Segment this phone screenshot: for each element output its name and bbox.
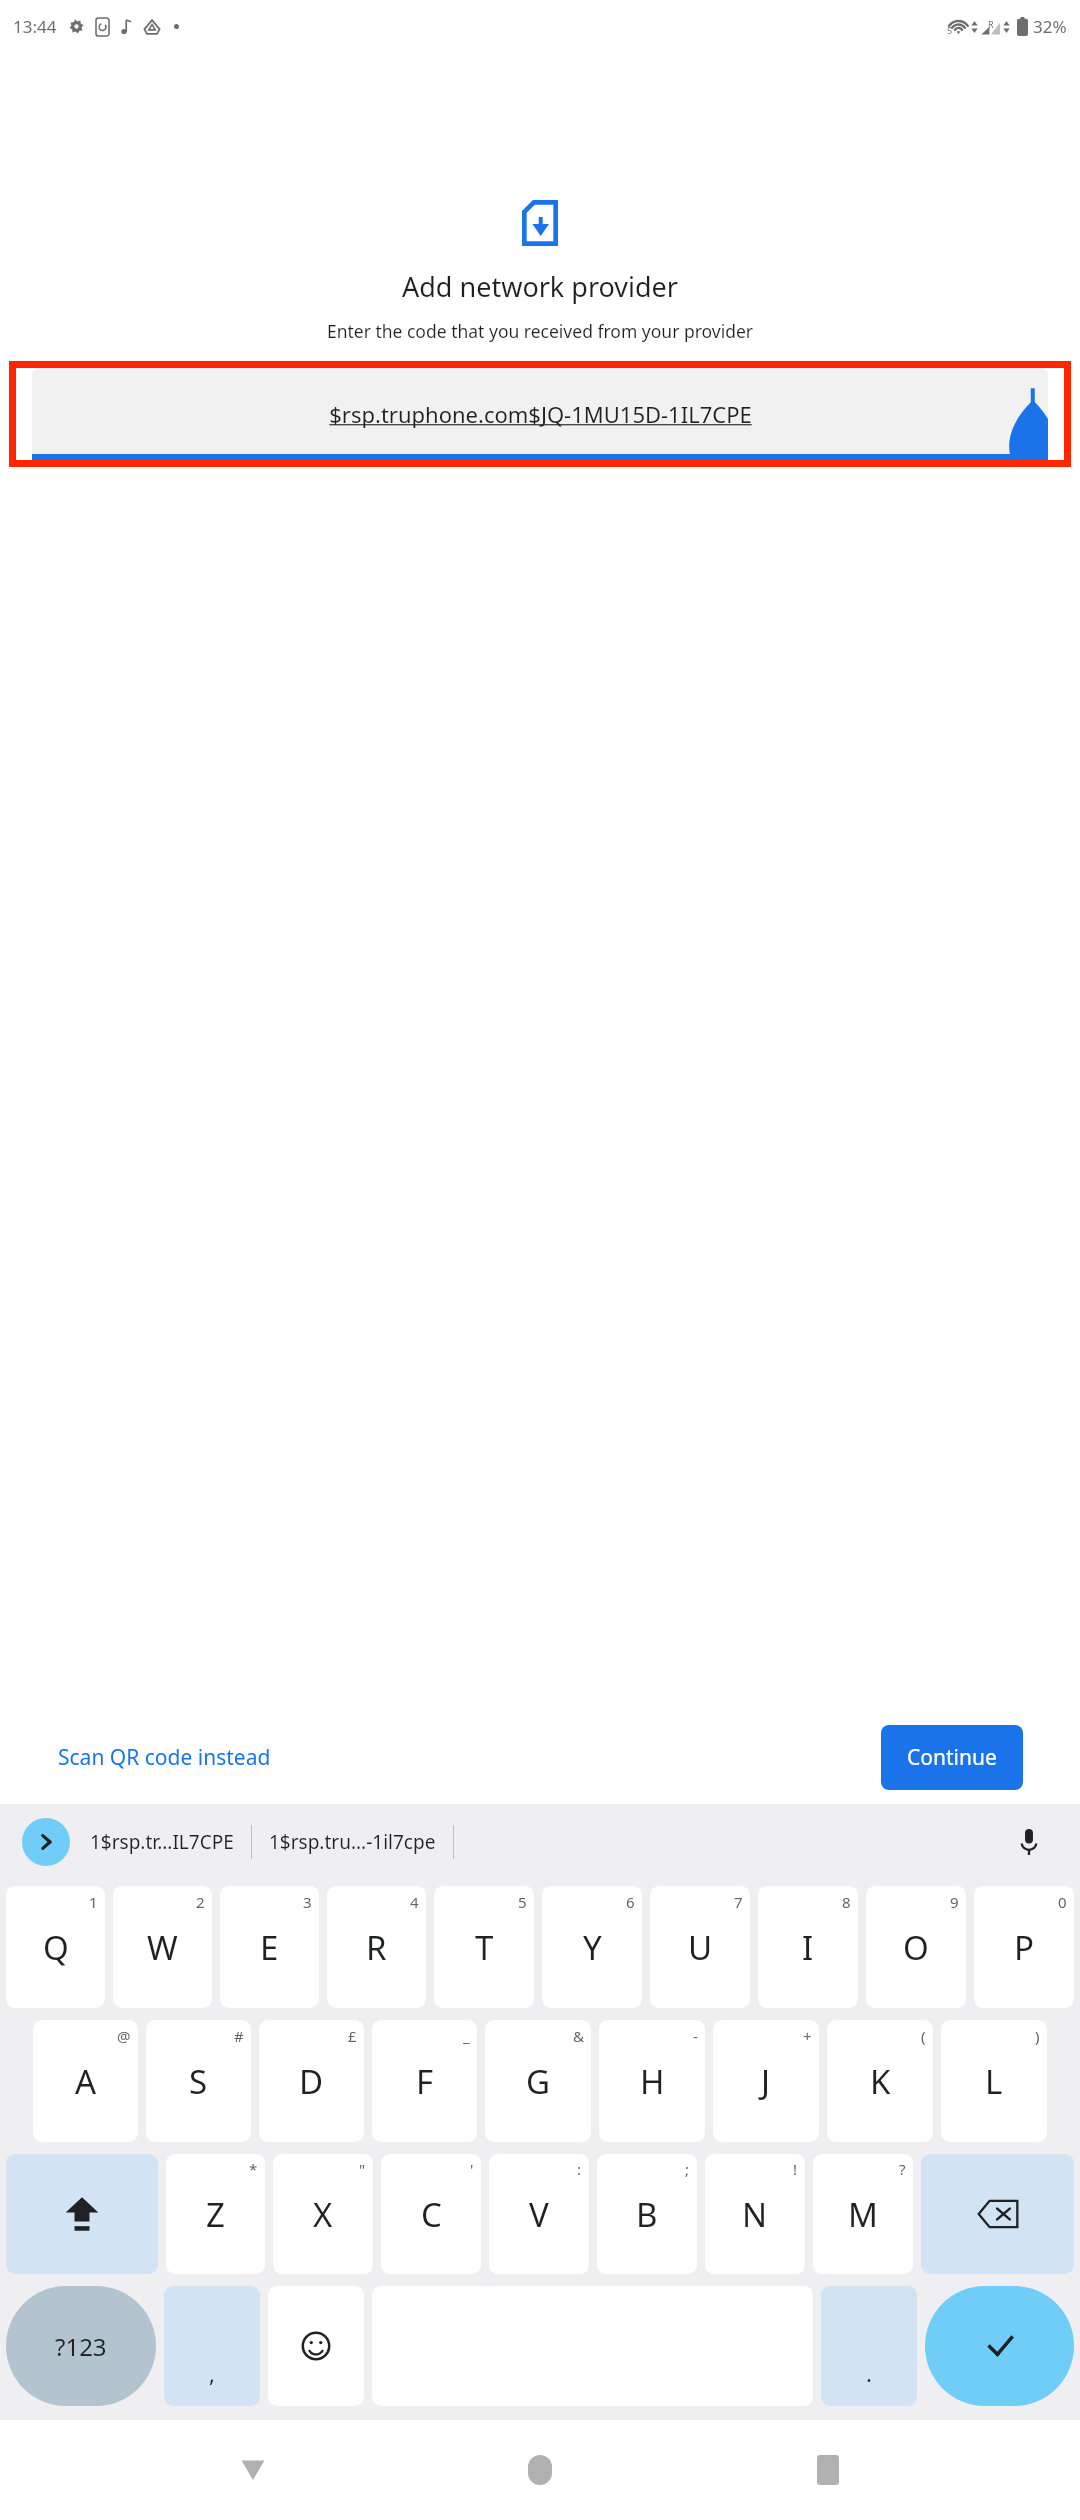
button[interactable]: T [434, 1886, 534, 2008]
staticText: F [416, 2059, 434, 2104]
staticText: ' [470, 2159, 474, 2179]
button[interactable]: Home [505, 2435, 575, 2505]
staticText: 13:44 [13, 15, 57, 38]
staticText: 2 [196, 1892, 205, 1912]
staticText: S [189, 2059, 208, 2104]
button[interactable]: N [705, 2154, 805, 2274]
button[interactable]: Scan QR code instead [52, 1733, 277, 1782]
button[interactable]: I [758, 1886, 858, 2008]
button[interactable]: A [33, 2020, 138, 2142]
staticText: + [803, 2026, 812, 2046]
button[interactable]: Expand suggestions [22, 1818, 70, 1866]
staticText: O [903, 1925, 929, 1970]
button[interactable]: S [146, 2020, 251, 2142]
button[interactable]: O [866, 1886, 966, 2008]
staticText: J [761, 2059, 771, 2104]
staticText: X [313, 2192, 333, 2237]
staticText: C [421, 2192, 442, 2237]
button[interactable]: Z [166, 2154, 265, 2274]
button[interactable]: 1$rsp.tr...IL7CPE [86, 1821, 238, 1863]
staticText: Z [206, 2192, 225, 2237]
button[interactable]: F [372, 2020, 477, 2142]
staticText: ?123 [55, 2330, 107, 2363]
staticText: 4 [410, 1892, 419, 1912]
staticText: L [985, 2059, 1003, 2104]
button[interactable]: $rsp.truphone.com$JQ-1MU15D-1IL7CPE [32, 368, 1048, 460]
button[interactable]: M [813, 2154, 913, 2274]
staticText: 9 [950, 1892, 959, 1912]
staticText: I [802, 1925, 814, 1970]
staticText: " [359, 2159, 366, 2179]
button[interactable]: Q [6, 1886, 105, 2008]
button[interactable]: J [713, 2020, 819, 2142]
staticText: * [249, 2159, 258, 2179]
staticText: R [366, 1925, 387, 1970]
button[interactable]: Shift [6, 2154, 158, 2274]
button[interactable]: R [327, 1886, 426, 2008]
button[interactable]: E [220, 1886, 319, 2008]
staticText: W [147, 1925, 178, 1970]
staticText: A [75, 2059, 97, 2104]
button[interactable]: Back [218, 2435, 288, 2505]
button[interactable]: X [273, 2154, 373, 2274]
button[interactable]: G [485, 2020, 591, 2142]
button[interactable]: P [974, 1886, 1074, 2008]
staticText: U [688, 1925, 713, 1970]
button[interactable]: Continue [881, 1725, 1023, 1790]
staticText: $rsp.truphone.com$JQ-1MU15D-1IL7CPE [329, 399, 752, 429]
staticText: P [1014, 1925, 1034, 1970]
button[interactable]: Y [542, 1886, 642, 2008]
button[interactable]: V [489, 2154, 589, 2274]
button[interactable]: Emoji [268, 2286, 364, 2406]
staticText: R [988, 18, 994, 30]
button[interactable]: H [599, 2020, 705, 2142]
staticText: , [209, 2358, 215, 2388]
staticText: 8 [842, 1892, 851, 1912]
staticText: & [573, 2026, 584, 2046]
staticText: Y [583, 1925, 602, 1970]
staticText: 1$rsp.tru...-1il7cpe [269, 1829, 436, 1855]
staticText: Add network provider [0, 268, 1080, 305]
staticText: V [529, 2192, 549, 2237]
staticText: Q [43, 1925, 69, 1970]
button[interactable]: Backspace [921, 2154, 1074, 2274]
button[interactable]: W [113, 1886, 212, 2008]
staticText: 6 [626, 1892, 635, 1912]
button[interactable]: U [650, 1886, 750, 2008]
button[interactable]: D [259, 2020, 364, 2142]
button[interactable]: , [164, 2286, 260, 2406]
staticText: . [866, 2358, 872, 2388]
staticText: B [636, 2192, 658, 2237]
staticText: ! [793, 2159, 798, 2179]
button[interactable]: 1$rsp.tru...-1il7cpe [265, 1821, 440, 1863]
button[interactable]: K [827, 2020, 933, 2142]
staticText: M [848, 2192, 878, 2237]
button[interactable]: ?123 [6, 2286, 156, 2406]
staticText: 0 [1058, 1892, 1067, 1912]
staticText: K [870, 2059, 891, 2104]
button[interactable]: L [941, 2020, 1047, 2142]
staticText: _ [463, 2026, 470, 2046]
staticText: ? [899, 2159, 906, 2179]
staticText: # [234, 2026, 244, 2046]
staticText: £ [348, 2026, 357, 2046]
button[interactable]: B [597, 2154, 697, 2274]
staticText: Scan QR code instead [58, 1743, 271, 1772]
staticText: G [526, 2059, 551, 2104]
staticText: Continue [907, 1743, 997, 1772]
button[interactable]: C [381, 2154, 481, 2274]
button[interactable]: Enter [925, 2286, 1074, 2406]
staticText: 3 [303, 1892, 312, 1912]
staticText: : [577, 2159, 582, 2179]
staticText: E [260, 1925, 279, 1970]
button[interactable]: . [821, 2286, 917, 2406]
button[interactable]: Recents [793, 2435, 863, 2505]
staticText: 5 [947, 24, 953, 36]
staticText: ; [685, 2159, 690, 2179]
staticText: ( [921, 2026, 926, 2046]
staticText: - [693, 2026, 698, 2046]
staticText: @ [117, 2026, 131, 2046]
button[interactable]: Voice input [1006, 1819, 1052, 1865]
staticText: H [640, 2059, 665, 2104]
